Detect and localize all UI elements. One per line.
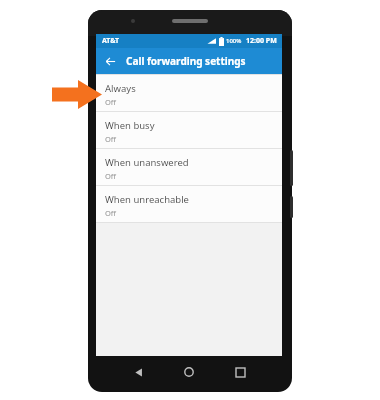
staticText: Off [105, 208, 117, 218]
button[interactable]: When unanswered [96, 148, 282, 185]
staticText: Off [105, 171, 117, 181]
button[interactable]: Back [100, 51, 120, 71]
staticText: Off [105, 134, 117, 144]
staticText: Off [105, 97, 117, 107]
staticText: Always [105, 82, 136, 95]
button[interactable]: When busy [96, 111, 282, 148]
staticText: When busy [105, 119, 155, 132]
button[interactable]: Recent apps [230, 362, 250, 382]
staticText: When unreachable [105, 193, 189, 206]
staticText: 12:00 PM [246, 36, 277, 46]
button[interactable]: Back [128, 362, 148, 382]
staticText: AT&T [102, 36, 120, 46]
staticText: When unanswered [105, 156, 189, 169]
button[interactable]: When unreachable [96, 185, 282, 222]
staticText: 100% [226, 37, 242, 45]
button[interactable]: Home [179, 362, 199, 382]
staticText: Call forwarding settings [126, 54, 246, 68]
button[interactable]: Always [96, 74, 282, 111]
